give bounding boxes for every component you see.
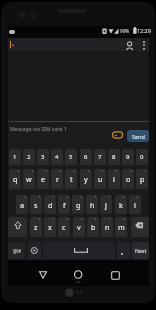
button[interactable] [8, 38, 149, 51]
button[interactable]: o [122, 169, 134, 189]
button[interactable]: @!# [8, 242, 25, 259]
button[interactable]: 7 [94, 149, 106, 165]
button[interactable]: n [101, 217, 113, 237]
staticText: a [20, 200, 25, 210]
staticText: r [56, 174, 59, 184]
staticText: 4 [55, 153, 59, 161]
staticText: g [76, 200, 81, 210]
staticText: z [34, 222, 38, 232]
staticText: i [113, 174, 115, 184]
staticText: x [48, 222, 52, 232]
staticText: l [134, 200, 136, 210]
button[interactable]: v [73, 217, 85, 237]
staticText: LG [76, 288, 84, 296]
staticText: f [63, 200, 66, 210]
staticText: Send [132, 133, 145, 140]
button[interactable] [39, 271, 47, 279]
staticText: @!# [13, 248, 21, 254]
staticText: c [62, 222, 66, 232]
button[interactable] [74, 270, 83, 279]
button[interactable]: 8 [108, 149, 120, 165]
staticText: 3 [41, 153, 45, 161]
staticText: 7 [98, 153, 102, 161]
button[interactable]: g [72, 195, 84, 214]
staticText: 6 [84, 153, 88, 161]
staticText: d [48, 200, 53, 210]
button[interactable]: j [100, 195, 112, 214]
button[interactable]: a [16, 195, 28, 214]
button[interactable]: 2 [23, 149, 35, 165]
button[interactable]: 0 [136, 149, 148, 165]
button[interactable]: p [136, 169, 148, 189]
staticText: y [84, 174, 88, 184]
button[interactable] [8, 217, 27, 237]
button[interactable]: i [108, 169, 120, 189]
staticText: Message via SIM card 1 [10, 125, 67, 132]
staticText: s [34, 200, 38, 210]
button[interactable]: x [44, 217, 56, 237]
button[interactable] [28, 242, 41, 259]
button[interactable] [117, 242, 130, 259]
button[interactable]: t [65, 169, 77, 189]
staticText: q [13, 174, 18, 184]
button[interactable]: y [80, 169, 92, 189]
button[interactable]: Send [127, 130, 149, 142]
button[interactable]: q [9, 169, 21, 189]
staticText: 0 [140, 153, 144, 161]
staticText: n [105, 222, 110, 232]
button[interactable]: 4 [51, 149, 63, 165]
staticText: p [140, 174, 145, 184]
button[interactable] [131, 217, 149, 237]
staticText: Next [135, 247, 147, 254]
button[interactable]: d [44, 195, 56, 214]
button[interactable] [112, 131, 123, 139]
button[interactable]: c [58, 217, 70, 237]
button[interactable]: 5 [65, 149, 77, 165]
staticText: v [77, 222, 81, 232]
staticText: w [26, 174, 32, 184]
button[interactable]: u [94, 169, 106, 189]
button[interactable]: l [129, 195, 141, 214]
button[interactable]: s [30, 195, 42, 214]
button[interactable]: b [87, 217, 99, 237]
staticText: u [98, 174, 103, 184]
staticText: j [105, 200, 107, 210]
button[interactable]: 3 [37, 149, 49, 165]
button[interactable]: e [37, 169, 49, 189]
staticText: m [118, 222, 125, 232]
button[interactable] [43, 242, 115, 259]
button[interactable]: z [30, 217, 42, 237]
button[interactable]: r [51, 169, 63, 189]
staticText: 90% [120, 28, 130, 34]
button[interactable]: 6 [80, 149, 92, 165]
staticText: 5 [69, 153, 73, 161]
button[interactable] [142, 41, 146, 50]
button[interactable]: k [115, 195, 127, 214]
staticText: 1 [13, 153, 17, 161]
staticText: o [126, 174, 131, 184]
staticText: 12:29 [137, 27, 151, 34]
staticText: t [70, 174, 73, 184]
staticText: 9 [126, 153, 130, 161]
button[interactable]: h [86, 195, 98, 214]
staticText: 2 [27, 153, 31, 161]
button[interactable] [126, 41, 134, 51]
button[interactable]: Next [132, 242, 149, 259]
staticText: e [41, 174, 46, 184]
staticText: 8 [112, 153, 116, 161]
button[interactable]: m [115, 217, 127, 237]
button[interactable]: 1 [9, 149, 21, 165]
button[interactable]: w [23, 169, 35, 189]
staticText: k [119, 200, 123, 210]
button[interactable] [111, 271, 120, 280]
button[interactable]: 9 [122, 149, 134, 165]
staticText: b [91, 222, 96, 232]
button[interactable]: f [58, 195, 70, 214]
staticText: h [90, 200, 95, 210]
